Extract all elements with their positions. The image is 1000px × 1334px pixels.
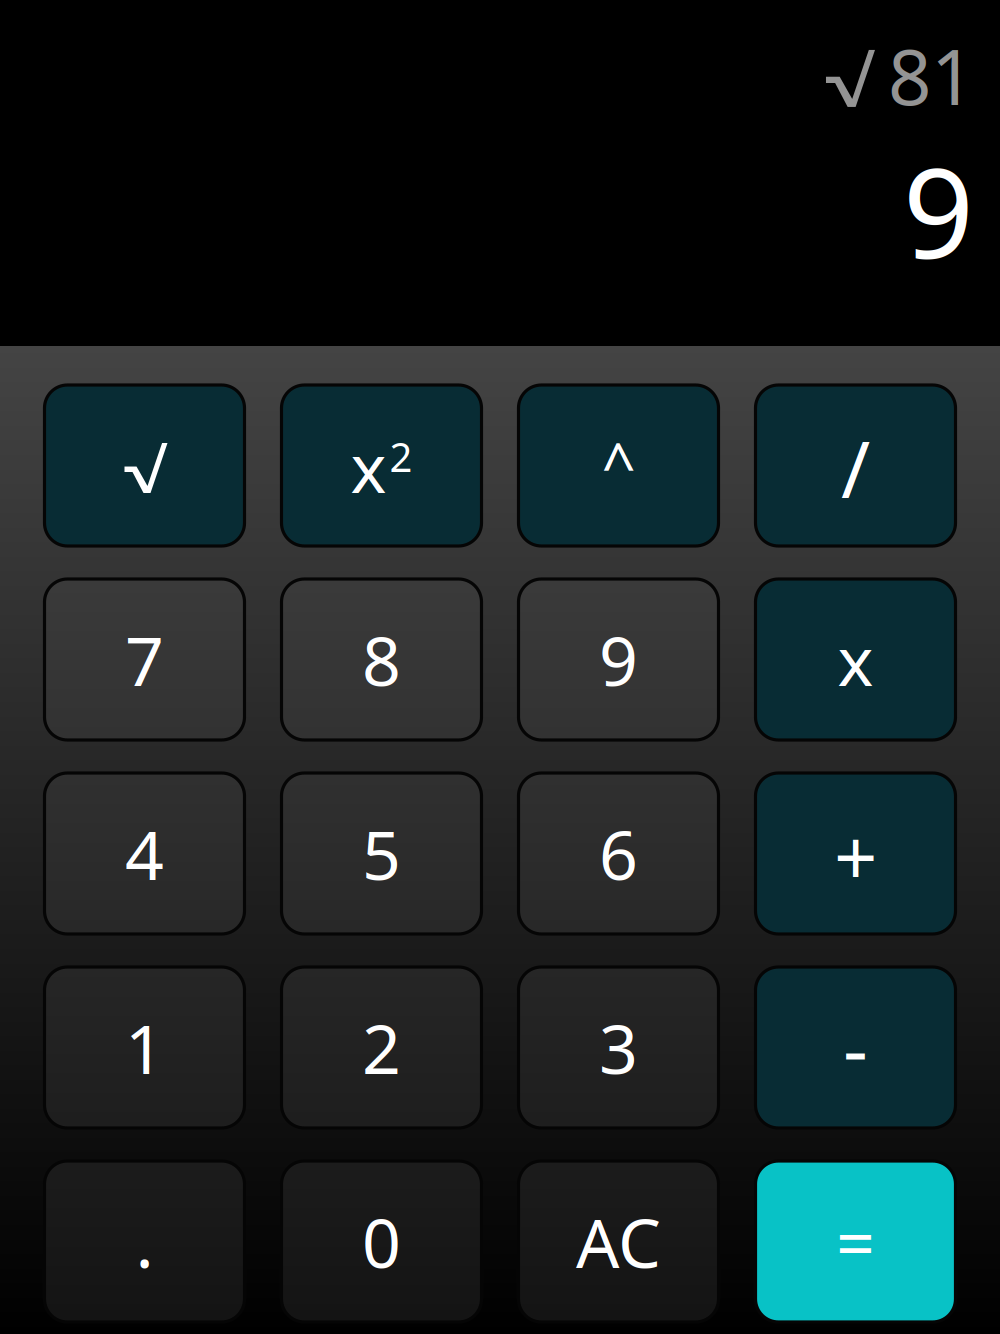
staticText: 7 xyxy=(125,614,164,705)
staticText: / xyxy=(841,415,870,520)
button[interactable]: - xyxy=(755,967,955,1128)
staticText: - xyxy=(843,996,868,1099)
button[interactable]: 0 xyxy=(281,1161,481,1322)
button[interactable]: 5 xyxy=(281,773,481,934)
staticText: 2 xyxy=(389,430,412,483)
button[interactable]: 2 xyxy=(281,967,481,1128)
staticText: = xyxy=(836,1196,875,1287)
staticText: 2 xyxy=(362,1002,401,1093)
button[interactable]: 1 xyxy=(44,967,244,1128)
staticText: 6 xyxy=(599,808,638,899)
staticText: . xyxy=(135,1196,153,1287)
staticText: 8 xyxy=(362,614,401,705)
staticText: + xyxy=(834,806,877,907)
staticText: AC xyxy=(576,1196,661,1287)
button[interactable]: 9 xyxy=(518,579,718,740)
staticText: 4 xyxy=(125,808,164,899)
button[interactable]: . xyxy=(44,1161,244,1322)
button[interactable] xyxy=(44,385,244,546)
staticText: 1 xyxy=(125,1002,164,1093)
button[interactable]: = xyxy=(755,1161,955,1322)
button[interactable]: 6 xyxy=(518,773,718,934)
staticText: 5 xyxy=(362,808,401,899)
staticText: 0 xyxy=(362,1196,401,1287)
button[interactable]: x xyxy=(281,385,481,546)
staticText: 9 xyxy=(599,614,638,705)
staticText: 9 xyxy=(903,128,974,293)
button[interactable]: + xyxy=(755,773,955,934)
button[interactable]: / xyxy=(755,385,955,546)
staticText: x xyxy=(350,421,386,512)
button[interactable]: 4 xyxy=(44,773,244,934)
button[interactable]: x xyxy=(755,579,955,740)
button[interactable]: 3 xyxy=(518,967,718,1128)
button[interactable]: AC xyxy=(518,1161,718,1322)
staticText: ^ xyxy=(601,424,635,503)
button[interactable]: 7 xyxy=(44,579,244,740)
button[interactable]: ^ xyxy=(518,385,718,546)
staticText: x xyxy=(837,614,873,705)
button[interactable]: 8 xyxy=(281,579,481,740)
staticText: 81 xyxy=(888,25,974,126)
staticText: 3 xyxy=(599,1002,638,1093)
